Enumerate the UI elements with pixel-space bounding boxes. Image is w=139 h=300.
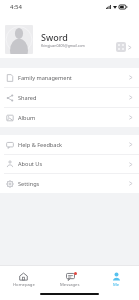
staticText: Help & Feedback — [18, 141, 129, 149]
staticText: Family management — [18, 74, 129, 82]
staticText: Album — [18, 114, 129, 122]
button[interactable]: Help & Feedback — [0, 135, 139, 154]
button[interactable]: Shared — [0, 88, 139, 107]
staticText: Homepage — [13, 282, 35, 287]
button[interactable]: Family management — [0, 68, 139, 87]
staticText: 4:54 — [10, 3, 22, 11]
staticText: fkingjuan0405@gmail.com — [41, 43, 85, 48]
button[interactable]: Settings — [0, 174, 139, 193]
button[interactable]: Sword — [0, 14, 139, 58]
staticText: Shared — [18, 94, 129, 102]
button[interactable]: Messages — [47, 272, 93, 287]
staticText: Settings — [18, 180, 129, 188]
button[interactable]: About Us — [0, 155, 139, 173]
staticText: Sword — [41, 31, 68, 43]
staticText: Me — [113, 282, 120, 287]
staticText: About Us — [18, 160, 129, 168]
button[interactable]: Scan QR code — [116, 42, 126, 52]
button[interactable]: Me — [93, 272, 139, 287]
button[interactable]: Album — [0, 108, 139, 127]
staticText: Messages — [60, 282, 80, 287]
button[interactable]: Homepage — [0, 272, 47, 287]
